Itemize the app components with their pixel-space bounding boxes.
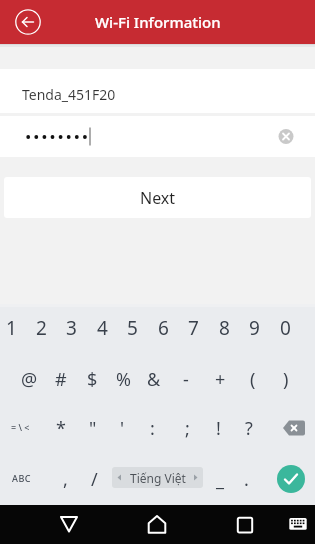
button[interactable]: 3 bbox=[56, 312, 86, 344]
button[interactable] bbox=[137, 505, 177, 544]
button[interactable]: Next bbox=[4, 177, 311, 218]
staticText: . bbox=[244, 467, 249, 492]
button[interactable]: ABC bbox=[6, 462, 36, 494]
button[interactable]: 5 bbox=[117, 312, 147, 344]
staticText: 0 bbox=[280, 315, 291, 341]
button[interactable]: % bbox=[108, 363, 138, 395]
staticText: 9 bbox=[249, 315, 260, 341]
staticText: & bbox=[147, 367, 161, 392]
staticText: $ bbox=[87, 367, 98, 392]
staticText: Next bbox=[140, 187, 176, 209]
staticText: + bbox=[215, 367, 226, 392]
staticText: * bbox=[56, 416, 66, 441]
button[interactable]: @ bbox=[14, 363, 44, 395]
button[interactable]: / bbox=[79, 463, 109, 495]
staticText: : bbox=[150, 416, 155, 441]
button[interactable] bbox=[15, 9, 41, 35]
staticText: 4 bbox=[97, 315, 108, 341]
button[interactable]: # bbox=[46, 363, 76, 395]
button[interactable]: 2 bbox=[26, 312, 56, 344]
button[interactable]: " bbox=[78, 412, 108, 444]
staticText: # bbox=[55, 367, 67, 392]
staticText: ) bbox=[283, 367, 289, 392]
button[interactable]: ( bbox=[238, 363, 268, 395]
staticText: 8 bbox=[219, 315, 230, 341]
staticText: ABC bbox=[12, 472, 31, 484]
staticText: = \ < bbox=[11, 421, 30, 433]
staticText: 1 bbox=[6, 315, 17, 341]
staticText: / bbox=[91, 467, 98, 492]
button[interactable] bbox=[225, 505, 265, 544]
staticText: 6 bbox=[158, 315, 169, 341]
button[interactable]: ! bbox=[203, 412, 233, 444]
staticText: 2 bbox=[36, 315, 47, 341]
button[interactable]: 4 bbox=[87, 312, 117, 344]
button[interactable]: 8 bbox=[209, 312, 239, 344]
button[interactable] bbox=[0, 116, 315, 157]
button[interactable]: Tenda_451F20 bbox=[0, 69, 315, 113]
staticText: 5 bbox=[127, 315, 138, 341]
staticText: , bbox=[63, 467, 68, 492]
staticText: 7 bbox=[188, 315, 199, 341]
button[interactable]: $ bbox=[77, 363, 107, 395]
staticText: ( bbox=[250, 367, 256, 392]
staticText: ; bbox=[185, 416, 190, 441]
button[interactable]: + bbox=[205, 363, 235, 395]
staticText: % bbox=[116, 367, 131, 392]
staticText: " bbox=[89, 416, 97, 441]
button[interactable] bbox=[278, 414, 310, 442]
staticText: 3 bbox=[66, 315, 77, 341]
button[interactable]: ? bbox=[234, 412, 264, 444]
button[interactable]: 6 bbox=[148, 312, 178, 344]
staticText: Tenda_451F20 bbox=[22, 85, 116, 104]
staticText: ! bbox=[216, 416, 221, 441]
button[interactable]: 7 bbox=[178, 312, 208, 344]
button[interactable]: ; bbox=[172, 412, 202, 444]
button[interactable]: 1 bbox=[0, 312, 26, 344]
button[interactable]: * bbox=[46, 412, 76, 444]
button[interactable]: : bbox=[137, 412, 167, 444]
staticText: _ bbox=[216, 467, 224, 492]
button[interactable]: , bbox=[50, 463, 80, 495]
button[interactable] bbox=[282, 505, 314, 544]
staticText: ' bbox=[120, 416, 125, 441]
button[interactable]: ' bbox=[107, 412, 137, 444]
staticText: @ bbox=[21, 367, 38, 392]
button[interactable]: . bbox=[231, 463, 261, 495]
staticText: Tiếng Việt bbox=[130, 470, 186, 486]
button[interactable]: 0 bbox=[270, 312, 300, 344]
staticText: Wi-Fi Information bbox=[95, 12, 221, 32]
button[interactable] bbox=[277, 465, 305, 493]
staticText: - bbox=[183, 367, 189, 392]
button[interactable]: - bbox=[171, 363, 201, 395]
staticText: ? bbox=[245, 416, 253, 441]
button[interactable]: ) bbox=[271, 363, 301, 395]
button[interactable]: Tiếng Việt bbox=[112, 467, 203, 488]
button[interactable] bbox=[49, 505, 89, 544]
button[interactable]: = \ < bbox=[5, 411, 35, 443]
button[interactable]: _ bbox=[205, 463, 235, 495]
button[interactable]: 9 bbox=[239, 312, 269, 344]
button[interactable]: & bbox=[139, 363, 169, 395]
